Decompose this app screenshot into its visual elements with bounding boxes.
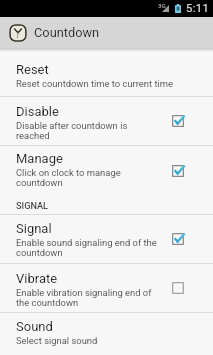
other: Checked	[170, 163, 186, 179]
button[interactable]: Disable	[0, 97, 213, 145]
staticText: Disable	[16, 104, 59, 119]
staticText: 5:11	[186, 2, 210, 15]
staticText: Select signal sound	[16, 335, 98, 346]
button[interactable]: Vibrate	[0, 264, 213, 312]
staticText: Manage	[16, 151, 63, 166]
staticText: Enable sound signaling end of the countd…	[16, 237, 160, 258]
button[interactable]: Reset	[0, 48, 213, 96]
other: Checked	[170, 231, 186, 247]
staticText: Disable after countdown is reached	[16, 120, 160, 141]
button[interactable]: Sound	[0, 313, 213, 355]
button[interactable]: Signal	[0, 215, 213, 263]
button[interactable]: Manage	[0, 146, 213, 195]
staticText: Vibrate	[16, 271, 58, 286]
staticText: Reset	[16, 62, 49, 77]
staticText: Reset countdown time to current time	[16, 78, 173, 89]
other: Checked	[170, 113, 186, 129]
staticText: Countdown	[34, 25, 100, 40]
staticText: SIGNAL	[16, 200, 49, 211]
staticText: Enable vibration signaling end of the co…	[16, 287, 160, 308]
staticText: Sound	[16, 319, 53, 334]
other: Unchecked	[170, 280, 186, 296]
staticText: 3G	[158, 2, 166, 9]
staticText: Click on clock to manage countdown	[16, 167, 160, 188]
staticText: Signal	[16, 221, 52, 236]
